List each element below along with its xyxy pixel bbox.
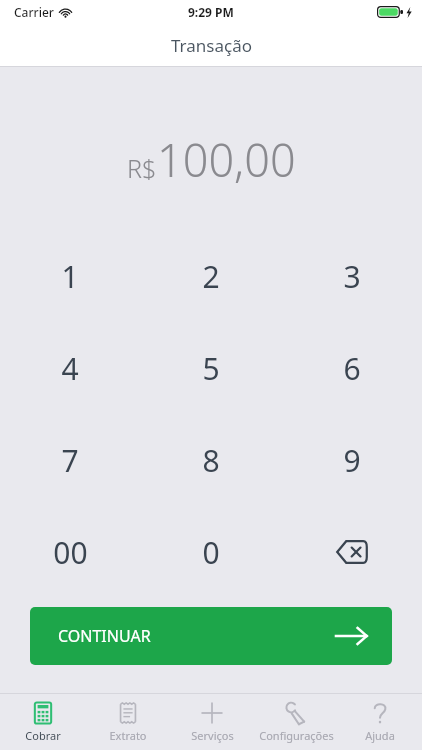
staticText: Configurações (259, 728, 334, 743)
button[interactable]: 8 (140, 414, 281, 506)
button[interactable]: 2 (140, 230, 281, 322)
staticText: Extrato (109, 728, 147, 743)
staticText: 00 (53, 532, 88, 573)
staticText: 6 (343, 348, 361, 389)
button[interactable]: 3 (281, 230, 422, 322)
button[interactable]: 6 (281, 322, 422, 414)
button[interactable]: 4 (0, 322, 140, 414)
staticText: Transação (171, 34, 252, 57)
button[interactable]: CONTINUAR (30, 607, 392, 665)
staticText: Serviços (191, 728, 234, 743)
button[interactable]: 1 (0, 230, 140, 322)
button[interactable]: Configurações (254, 694, 338, 750)
staticText: 5 (202, 348, 220, 389)
staticText: 7 (61, 440, 79, 481)
button[interactable]: 0 (140, 506, 281, 598)
button[interactable]: 7 (0, 414, 140, 506)
staticText: 9:29 PM (188, 4, 234, 20)
staticText: Ajuda (365, 728, 395, 743)
button[interactable]: Extrato (85, 694, 170, 750)
button[interactable]: Ajuda (338, 694, 422, 750)
staticText: R$ (127, 151, 157, 185)
staticText: Carrier (14, 4, 54, 20)
staticText: Cobrar (25, 728, 61, 743)
button[interactable]: 00 (0, 506, 140, 598)
staticText: 2 (202, 256, 220, 297)
staticText: 8 (202, 440, 220, 481)
staticText: CONTINUAR (58, 625, 151, 647)
button[interactable]: 5 (140, 322, 281, 414)
staticText: 100,00 (157, 129, 296, 190)
staticText: 3 (343, 256, 361, 297)
staticText: 4 (61, 348, 79, 389)
button[interactable]: 9 (281, 414, 422, 506)
staticText: 0 (202, 532, 220, 573)
button[interactable]: Backspace (281, 506, 422, 598)
button[interactable]: Serviços (170, 694, 254, 750)
staticText: 1 (61, 256, 79, 297)
staticText: 9 (343, 440, 361, 481)
button[interactable]: Cobrar (0, 694, 85, 750)
